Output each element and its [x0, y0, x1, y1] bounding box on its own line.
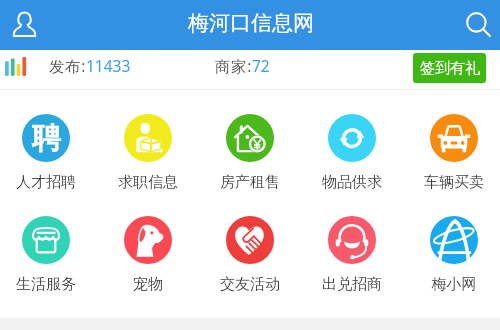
staticText: 车辆买卖 — [408, 173, 500, 192]
button[interactable]: 签到有礼 — [413, 53, 486, 83]
staticText: 物品供求 — [306, 173, 398, 192]
button[interactable]: 交友活动 — [204, 212, 296, 294]
staticText: 商家: — [215, 55, 252, 76]
staticText: 72 — [252, 55, 270, 76]
button[interactable]: 出兑招商 — [306, 212, 398, 294]
button[interactable]: 物品供求 — [306, 110, 398, 192]
staticText: 聘 — [32, 120, 61, 157]
staticText: 梅小网 — [408, 275, 500, 294]
staticText: 交友活动 — [204, 275, 296, 294]
button[interactable]: 求职信息 — [102, 110, 194, 192]
staticText: 宠物 — [102, 275, 194, 294]
staticText: 求职信息 — [102, 173, 194, 192]
staticText: 签到有礼 — [420, 59, 480, 78]
button[interactable]: 宠物 — [102, 212, 194, 294]
staticText: 生活服务 — [0, 275, 92, 294]
button[interactable]: 发布: — [49, 46, 131, 85]
button[interactable]: 车辆买卖 — [408, 110, 500, 192]
staticText: 房产租售 — [204, 173, 296, 192]
button[interactable]: Account — [7, 7, 42, 42]
button[interactable]: 聘 — [0, 110, 92, 192]
staticText: 梅河口信息网 — [188, 10, 314, 36]
button[interactable]: 生活服务 — [0, 212, 92, 294]
button[interactable]: Search — [460, 6, 498, 44]
staticText: 人才招聘 — [0, 173, 92, 192]
staticText: 出兑招商 — [306, 275, 398, 294]
button[interactable]: 房产租售 — [204, 110, 296, 192]
button[interactable]: 商家: — [215, 46, 270, 85]
staticText: 11433 — [86, 55, 131, 76]
staticText: 发布: — [49, 55, 86, 76]
button[interactable]: 梅小网 — [408, 212, 500, 294]
